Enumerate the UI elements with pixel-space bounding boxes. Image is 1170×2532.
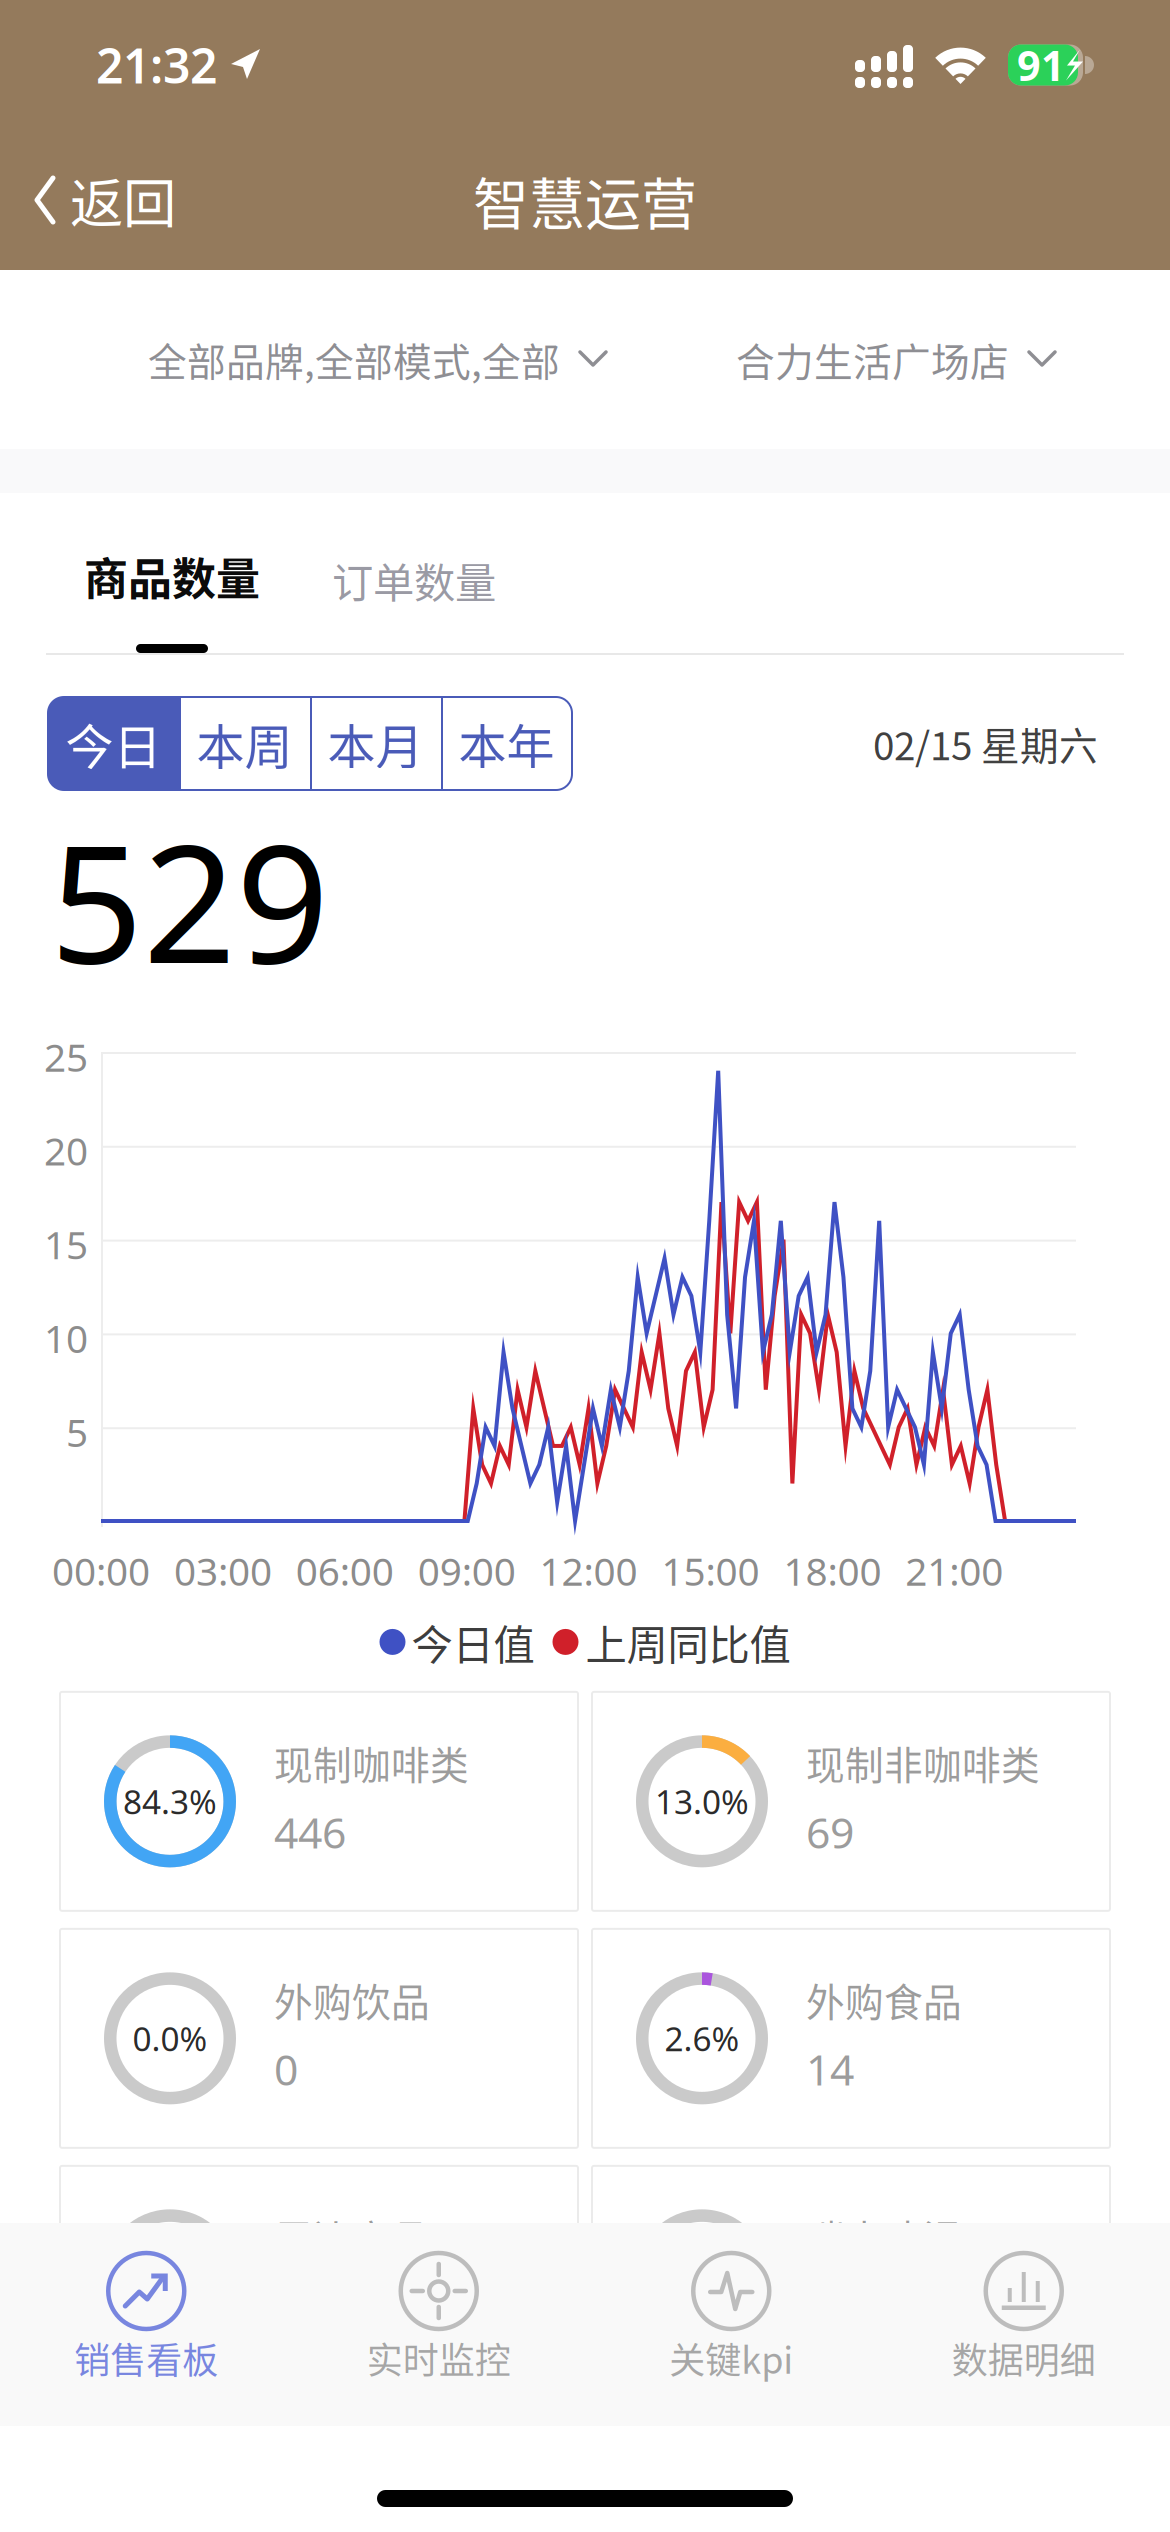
button[interactable]: 实时监控 (292, 2223, 585, 2426)
button[interactable]: 销售看板 (0, 2223, 292, 2426)
staticText: 21:00 (905, 1545, 1003, 1596)
staticText: 销售看板 (74, 2332, 218, 2384)
button[interactable]: 全部品牌,全部模式,全部 (148, 305, 608, 413)
staticText: 瑞幸冰渴 (806, 2208, 962, 2264)
staticText: 15 (44, 1219, 88, 1270)
staticText: 09:00 (418, 1545, 516, 1596)
staticText: 25 (44, 1031, 88, 1082)
staticText: 关键kpi (669, 2332, 793, 2384)
staticText: 446 (274, 1803, 346, 1860)
staticText: 529 (50, 792, 329, 1008)
staticText: 2.6% (664, 2016, 739, 2060)
staticText: 本年 (458, 709, 554, 778)
staticText: 84.3% (123, 1779, 217, 1823)
staticText: 周边商品 (274, 2208, 430, 2264)
staticText: 外购食品 (806, 1971, 962, 2027)
staticText: 06:00 (296, 1545, 394, 1596)
staticText: 0.0% (132, 2016, 207, 2060)
button[interactable]: 订单数量 (304, 550, 524, 653)
button[interactable]: 2.6% (592, 1929, 1110, 2148)
button[interactable]: 本年 (441, 697, 572, 790)
staticText: 现制咖啡类 (274, 1734, 469, 1790)
staticText: 0 (274, 2040, 298, 2097)
staticText: 本周 (196, 709, 292, 778)
button[interactable]: 0.0% (60, 2166, 578, 2385)
button[interactable]: 本月 (310, 697, 441, 790)
staticText: 5 (66, 1406, 88, 1457)
staticText: 15:00 (661, 1545, 759, 1596)
staticText: 合力生活广场店 (736, 331, 1009, 387)
staticText: 返回 (70, 161, 176, 239)
staticText: 20 (44, 1125, 88, 1176)
button[interactable]: 今日 (48, 697, 179, 790)
staticText: 现制非咖啡类 (806, 1734, 1040, 1790)
staticText: 03:00 (174, 1545, 272, 1596)
staticText: 今日 (65, 709, 161, 778)
staticText: 0.0% (132, 2253, 207, 2297)
staticText: 0.0% (664, 2253, 739, 2297)
button[interactable]: 返回 (0, 143, 200, 257)
staticText: 智慧运营 (473, 159, 697, 241)
staticText: 今日值 (411, 1612, 534, 1672)
staticText: 订单数量 (332, 550, 496, 610)
staticText: 上周同比值 (585, 1612, 790, 1672)
staticText: 00:00 (52, 1545, 150, 1596)
button[interactable]: 合力生活广场店 (736, 305, 1057, 413)
staticText: 69 (806, 1803, 854, 1860)
staticText: 91 (1017, 38, 1065, 92)
staticText: 10 (44, 1312, 88, 1364)
staticText: 实时监控 (367, 2332, 511, 2384)
button[interactable]: 0.0% (60, 1929, 578, 2148)
staticText: 02/15 星期六 (873, 715, 1098, 771)
staticText: 全部品牌,全部模式,全部 (148, 331, 560, 387)
staticText: 14 (806, 2040, 854, 2097)
staticText: 21:32 (96, 33, 217, 97)
button[interactable]: 本周 (179, 697, 310, 790)
button[interactable]: 关键kpi (585, 2223, 877, 2426)
button[interactable]: 商品数量 (0, 544, 304, 653)
staticText: 数据明细 (952, 2332, 1096, 2384)
button[interactable]: 13.0% (592, 1692, 1110, 1911)
button[interactable]: 0.0% (592, 2166, 1110, 2385)
button[interactable]: 数据明细 (877, 2223, 1170, 2426)
staticText: 18:00 (783, 1545, 881, 1596)
staticText: 商品数量 (84, 544, 260, 608)
staticText: 13.0% (655, 1779, 749, 1823)
staticText: 12:00 (540, 1545, 638, 1596)
staticText: 本月 (327, 709, 423, 778)
button[interactable]: 84.3% (60, 1692, 578, 1911)
staticText: 外购饮品 (274, 1971, 430, 2027)
